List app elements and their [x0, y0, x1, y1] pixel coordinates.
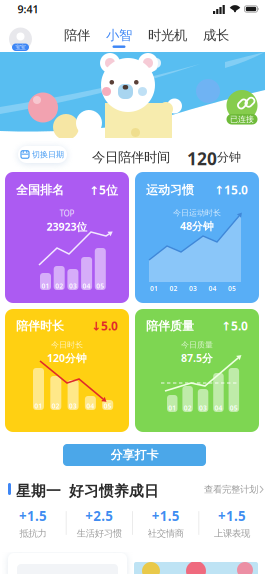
staticText: 分享打卡	[110, 448, 158, 462]
button[interactable]: 切换日期	[18, 146, 67, 163]
staticText: 03	[69, 402, 77, 410]
staticText: 宝宝	[15, 44, 25, 51]
staticText: 03	[189, 284, 197, 293]
staticText: 120分钟	[47, 351, 87, 365]
button[interactable]: 习惯卡片	[8, 553, 127, 574]
staticText: +1.5	[218, 507, 246, 525]
staticText: ↑15.0	[214, 182, 248, 198]
staticText: 01	[41, 282, 49, 290]
staticText: 04	[83, 282, 91, 290]
button[interactable]: 查看完整计划	[204, 476, 264, 503]
staticText: TOP	[59, 208, 74, 219]
staticText: 陪伴时长	[16, 319, 64, 333]
staticText: 01	[168, 404, 176, 412]
staticText: 01	[34, 402, 42, 410]
staticText: 社交情商	[148, 528, 184, 539]
staticText: ↑5位	[89, 182, 118, 198]
staticText: 02	[169, 284, 177, 293]
staticText: 05	[228, 284, 236, 293]
staticText: 23923位	[46, 220, 87, 234]
button[interactable]: 运动习惯	[135, 172, 259, 303]
button[interactable]: 陪伴	[56, 23, 98, 52]
button[interactable]: 陪伴时长	[5, 309, 129, 432]
button[interactable]: 宝宝档案	[9, 27, 32, 51]
button[interactable]: 活动卡片	[134, 555, 258, 574]
staticText: 87.5分	[181, 351, 213, 365]
staticText: +1.5	[152, 507, 180, 525]
staticText: 上课表现	[214, 528, 250, 539]
staticText: 02	[52, 402, 60, 410]
staticText: 05	[104, 402, 112, 410]
staticText: 05	[230, 404, 238, 412]
staticText: 星期一 好习惯养成日	[16, 482, 159, 500]
button[interactable]: 陪伴质量	[135, 309, 259, 432]
staticText: 已连接	[230, 114, 254, 124]
button[interactable]: 分享打卡	[63, 444, 206, 466]
staticText: 02	[184, 404, 192, 412]
staticText: ↑5.0	[221, 318, 248, 334]
staticText: 120	[187, 147, 217, 170]
staticText: ↓5.0	[91, 318, 118, 334]
staticText: 今日陪伴时间	[92, 149, 170, 165]
staticText: 今日运动时长	[173, 208, 221, 218]
staticText: +1.5	[19, 507, 47, 525]
staticText: 05	[96, 282, 104, 290]
staticText: 48分钟	[180, 219, 214, 233]
button[interactable]: 已连接	[226, 88, 258, 123]
staticText: 今日时长	[51, 340, 83, 350]
staticText: 9:41	[17, 2, 38, 16]
button[interactable]: 成长	[195, 23, 237, 52]
staticText: 分钟	[217, 150, 241, 165]
staticText: 运动习惯	[146, 183, 194, 197]
button[interactable]: 时光机	[140, 23, 195, 52]
button[interactable]: 全国排名	[5, 172, 129, 303]
staticText: 全国排名	[16, 183, 64, 197]
staticText: 02	[55, 282, 63, 290]
staticText: 陪伴	[64, 27, 90, 43]
staticText: 小智	[106, 27, 132, 43]
staticText: 生活好习惯	[77, 528, 122, 539]
staticText: 今日质量	[181, 340, 213, 350]
staticText: 抵抗力	[20, 528, 47, 539]
staticText: 01	[150, 284, 158, 293]
staticText: 04	[214, 404, 222, 412]
staticText: 04	[208, 284, 216, 293]
staticText: 陪伴质量	[146, 319, 194, 333]
staticText: 切换日期	[32, 150, 64, 159]
staticText: 03	[199, 404, 207, 412]
button[interactable]: 小智	[98, 23, 140, 52]
staticText: 04	[86, 402, 94, 410]
staticText: 03	[69, 282, 77, 290]
staticText: 时光机	[148, 27, 187, 43]
staticText: 查看完整计划	[204, 484, 258, 495]
staticText: 成长	[203, 27, 229, 43]
staticText: +2.5	[85, 507, 113, 525]
